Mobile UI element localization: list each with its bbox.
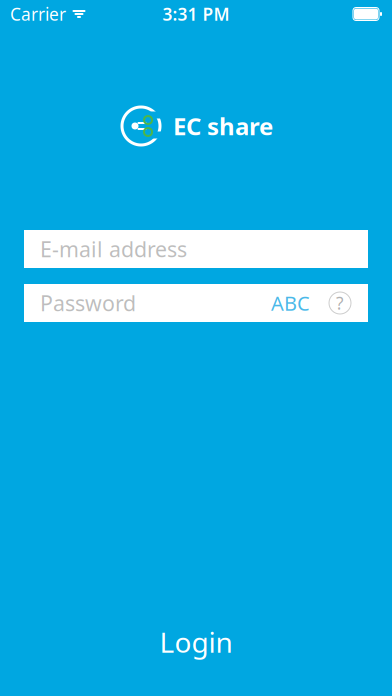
staticText: EC share [173, 110, 273, 142]
staticText: 3:31 PM [162, 2, 229, 25]
staticText: Carrier [10, 2, 66, 25]
staticText: ? [336, 291, 344, 314]
staticText: Login [159, 623, 232, 661]
staticText: Password [40, 289, 136, 317]
staticText: ABC [271, 290, 310, 316]
button[interactable]: Login [96, 620, 296, 664]
staticText: E-mail address [40, 235, 187, 263]
button[interactable]: ABC [267, 284, 314, 322]
button[interactable]: Password help [328, 291, 352, 315]
